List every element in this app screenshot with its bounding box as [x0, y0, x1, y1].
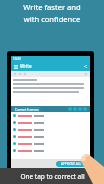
button[interactable]	[11, 126, 90, 133]
staticText: APPROVE ALL	[61, 162, 82, 166]
button[interactable]	[11, 147, 90, 154]
button[interactable]: Share	[83, 64, 88, 69]
button[interactable]	[11, 140, 90, 147]
button[interactable]: Format 1	[18, 72, 22, 76]
button[interactable]: Nav 1	[73, 107, 77, 111]
button[interactable]	[11, 133, 90, 140]
staticText: Write	[20, 63, 32, 69]
button[interactable]: Nav 0	[68, 107, 72, 111]
staticText: 10:30	[13, 57, 21, 61]
button[interactable]: APPROVE ALL	[56, 161, 86, 167]
button[interactable]: Nav 2	[78, 107, 82, 111]
button[interactable]: Format 0	[13, 72, 17, 76]
button[interactable]	[11, 112, 90, 119]
staticText: Write faster and with confidence	[0, 2, 104, 24]
button[interactable]: Nav 3	[83, 107, 87, 111]
button[interactable]: More	[84, 72, 88, 76]
staticText: Correct 6 errors	[15, 108, 39, 112]
button[interactable]: Correct 6 errors	[15, 107, 39, 112]
button[interactable]: Menu	[13, 64, 18, 69]
button[interactable]: Format 2	[23, 72, 27, 76]
button[interactable]	[11, 119, 90, 126]
staticText: One tap to correct all	[20, 172, 85, 181]
